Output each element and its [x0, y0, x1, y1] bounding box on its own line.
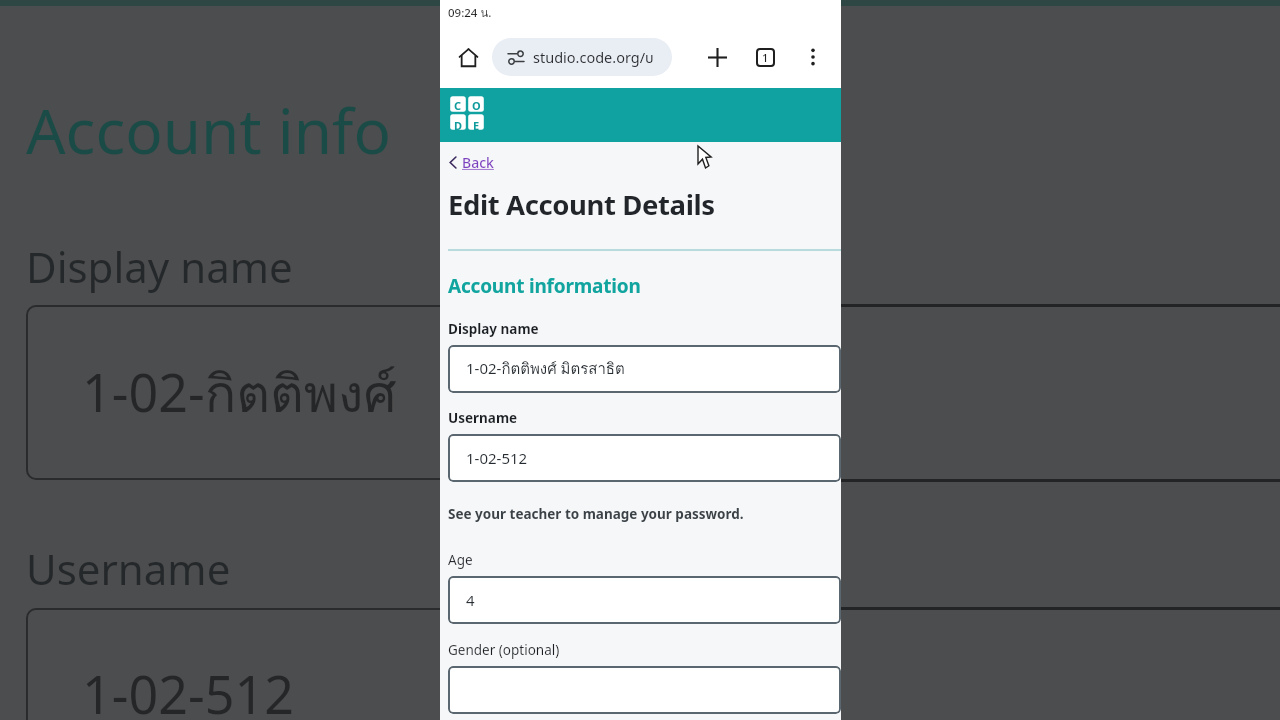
staticText: 1-02-512 — [466, 448, 528, 468]
staticText: D — [454, 118, 463, 133]
staticText: 1 — [762, 50, 769, 65]
staticText: 1-02-กิตติพงศ์ มิตรสาธิต — [466, 357, 625, 381]
button[interactable]: 1-02-512 — [448, 434, 841, 482]
button[interactable]: Back — [448, 153, 494, 172]
staticText: Display name — [448, 320, 539, 338]
button[interactable]: More options — [795, 39, 831, 75]
button[interactable]: Tabs — [747, 39, 783, 75]
staticText: Display name — [26, 238, 293, 295]
staticText: Age — [448, 551, 473, 569]
staticText: 1-02-512 — [82, 658, 294, 720]
staticText: Username — [26, 540, 231, 597]
staticText: Back — [462, 153, 494, 172]
button[interactable]: Code.org home — [449, 95, 485, 135]
button[interactable]: 1-02-กิตติพงศ์ มิตรสาธิต — [448, 345, 841, 393]
staticText: O — [472, 98, 481, 113]
staticText: Username — [448, 409, 518, 427]
staticText: 09:24 น. — [448, 4, 492, 22]
staticText: Account information — [448, 273, 641, 299]
staticText: See your teacher to manage your password… — [448, 505, 744, 523]
button[interactable]: Home — [450, 39, 486, 75]
staticText: C — [454, 98, 462, 113]
staticText: Edit Account Details — [448, 186, 715, 223]
staticText: 4 — [466, 590, 475, 610]
staticText: 1-02-กิตติพงศ์ — [82, 352, 397, 435]
button[interactable]: 4 — [448, 576, 841, 624]
staticText: studio.code.org/ᴜ — [533, 47, 654, 67]
staticText: E — [473, 118, 480, 133]
button[interactable]: New tab — [699, 39, 735, 75]
staticText: Gender (optional) — [448, 641, 560, 659]
button[interactable] — [448, 666, 841, 714]
staticText: Account info — [26, 88, 391, 172]
button[interactable]: studio.code.org/ᴜ — [492, 38, 672, 76]
